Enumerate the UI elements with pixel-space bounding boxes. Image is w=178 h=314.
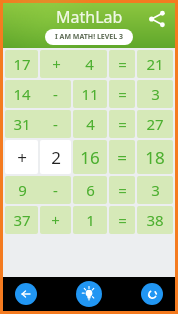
staticText: 18 — [145, 146, 165, 169]
button[interactable]: 31 — [5, 110, 71, 138]
staticText: 9 — [18, 180, 27, 200]
staticText: 14 — [13, 84, 31, 104]
staticText: 1 — [86, 210, 95, 230]
button[interactable]: + — [40, 206, 71, 234]
staticText: 38 — [146, 210, 164, 230]
button[interactable]: = — [109, 176, 135, 204]
button[interactable]: Share — [145, 7, 169, 31]
button[interactable]: = — [109, 80, 135, 108]
staticText: 3 — [151, 84, 160, 104]
button[interactable]: I AM MATH! LEVEL 3 — [45, 29, 133, 45]
staticText: 3 — [151, 180, 160, 200]
staticText: + — [52, 54, 61, 74]
staticText: 6 — [86, 180, 95, 200]
staticText: - — [53, 84, 58, 104]
button[interactable]: = — [109, 110, 135, 138]
staticText: 37 — [13, 210, 31, 230]
button[interactable]: + — [40, 50, 107, 78]
staticText: = — [118, 180, 127, 200]
staticText: - — [53, 180, 58, 200]
button[interactable]: 6 — [73, 176, 107, 204]
staticText: 17 — [13, 54, 31, 74]
button[interactable]: 37 — [5, 206, 38, 234]
staticText: I AM MATH! LEVEL 3 — [55, 32, 123, 42]
button[interactable]: Back — [15, 283, 37, 305]
staticText: 31 — [13, 114, 31, 134]
staticText: + — [17, 146, 27, 169]
staticText: 16 — [80, 146, 100, 169]
staticText: 11 — [81, 84, 99, 104]
staticText: = — [118, 210, 127, 230]
button[interactable]: 17 — [5, 50, 38, 78]
staticText: = — [118, 84, 127, 104]
button[interactable]: 18 — [137, 140, 173, 174]
staticText: - — [53, 114, 58, 134]
staticText: = — [118, 114, 127, 134]
button[interactable]: + — [5, 140, 38, 174]
button[interactable]: 21 — [137, 50, 173, 78]
button[interactable]: 27 — [137, 110, 173, 138]
staticText: 4 — [86, 114, 95, 134]
staticText: 2 — [51, 146, 61, 169]
button[interactable]: 1 — [73, 206, 107, 234]
button[interactable]: 11 — [73, 80, 107, 108]
button[interactable]: = — [109, 206, 135, 234]
staticText: = — [117, 146, 127, 169]
button[interactable]: 3 — [137, 176, 173, 204]
button[interactable]: 16 — [73, 140, 107, 174]
button[interactable]: Hint — [76, 281, 102, 307]
staticText: + — [51, 210, 60, 230]
button[interactable]: 3 — [137, 80, 173, 108]
staticText: 27 — [146, 114, 164, 134]
staticText: MathLab — [56, 6, 123, 28]
button[interactable]: 38 — [137, 206, 173, 234]
button[interactable]: 9 — [5, 176, 71, 204]
button[interactable]: 4 — [73, 110, 107, 138]
button[interactable]: Refresh — [141, 283, 163, 305]
staticText: 4 — [85, 54, 94, 74]
staticText: = — [118, 54, 127, 74]
button[interactable]: = — [109, 140, 135, 174]
button[interactable]: 2 — [40, 140, 71, 174]
staticText: 21 — [146, 54, 164, 74]
button[interactable]: 14 — [5, 80, 71, 108]
button[interactable]: = — [109, 50, 135, 78]
